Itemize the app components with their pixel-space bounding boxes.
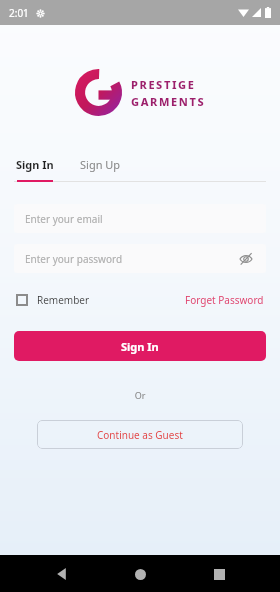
button[interactable]: Home <box>123 557 157 591</box>
button[interactable]: Enter your password <box>14 244 266 273</box>
button[interactable]: Remember <box>16 290 90 310</box>
staticText: Enter your email <box>25 212 255 226</box>
staticText: Sign In <box>16 157 54 172</box>
button[interactable]: Continue as Guest <box>37 420 243 449</box>
staticText: GARMENTS <box>131 94 206 109</box>
staticText: Enter your password <box>25 252 237 266</box>
button[interactable]: Show password <box>237 250 255 268</box>
button[interactable]: Back <box>45 557 79 591</box>
staticText: Or <box>0 389 280 401</box>
button[interactable]: Sign In <box>14 154 56 175</box>
staticText: Forget Password <box>185 293 264 307</box>
staticText: Remember <box>37 293 90 307</box>
button[interactable]: Recents <box>202 557 236 591</box>
staticText: PRESTIGE <box>131 77 196 92</box>
button[interactable]: Forget Password <box>185 290 264 310</box>
staticText: Sign Up <box>80 157 121 172</box>
button[interactable]: Sign Up <box>78 154 123 175</box>
button[interactable]: Sign In <box>14 331 266 361</box>
staticText: Continue as Guest <box>97 428 183 442</box>
staticText: 2:01 <box>9 6 29 20</box>
button[interactable]: Enter your email <box>14 204 266 233</box>
staticText: Sign In <box>121 339 159 354</box>
